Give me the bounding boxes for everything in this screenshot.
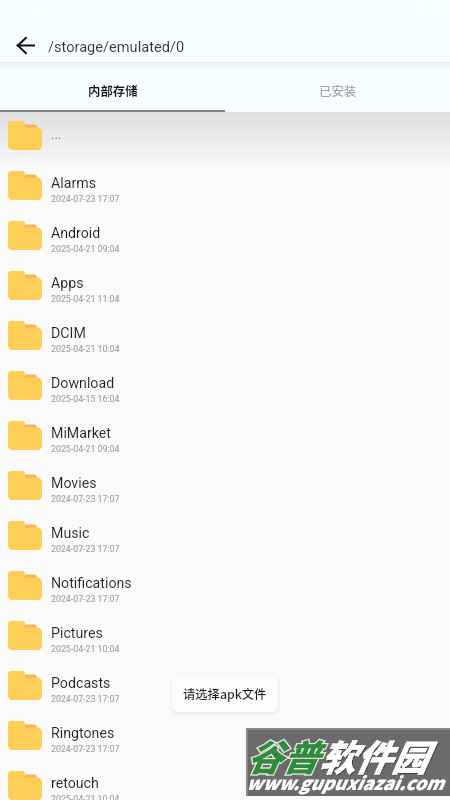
staticText: 软件园 (319, 729, 428, 781)
staticText: 内部存储 (88, 82, 138, 100)
staticText: Pictures (51, 625, 103, 642)
staticText: 2025-04-21 11:04 (51, 294, 120, 304)
staticText: Download (51, 375, 115, 392)
staticText: ... (51, 127, 62, 142)
staticText: 2024-07-23 17:07 (51, 744, 120, 754)
staticText: Podcasts (51, 675, 111, 692)
button[interactable]: DCIM (0, 310, 450, 360)
button[interactable]: Movies (0, 460, 450, 510)
staticText: Movies (51, 475, 97, 492)
staticText: 2024-07-23 17:07 (51, 694, 120, 704)
button[interactable]: Alarms (0, 160, 450, 210)
button[interactable]: Music (0, 510, 450, 560)
button[interactable]: Podcasts (0, 660, 450, 710)
button[interactable]: Android (0, 210, 450, 260)
staticText: 请选择apk文件 (183, 685, 267, 703)
staticText: 2025-04-21 09:04 (51, 444, 120, 454)
button[interactable]: retouch (0, 760, 450, 800)
staticText: Android (51, 225, 101, 242)
staticText: Apps (51, 275, 84, 292)
staticText: 2025-04-21 10:04 (51, 794, 120, 800)
staticText: /storage/emulated/0 (48, 38, 185, 55)
staticText: 2025-04-21 09:04 (51, 244, 120, 254)
staticText: 2024-07-23 17:07 (51, 194, 120, 204)
staticText: Music (51, 525, 90, 542)
staticText: Ringtones (51, 725, 115, 742)
button[interactable]: Ringtones (0, 710, 450, 760)
button[interactable]: 已安装 (225, 70, 450, 110)
staticText: DCIM (51, 325, 86, 342)
button[interactable]: ... (0, 110, 450, 160)
staticText: 软件园 (320, 730, 429, 782)
staticText: 2024-07-23 17:07 (51, 544, 120, 554)
staticText: 谷普 (246, 729, 319, 781)
staticText: 2025-04-21 10:04 (51, 644, 120, 654)
staticText: www.gupuxiazai.com (246, 769, 444, 795)
staticText: 2024-07-23 17:07 (51, 594, 120, 604)
staticText: Alarms (51, 175, 96, 192)
button[interactable]: MiMarket (0, 410, 450, 460)
staticText: Notifications (51, 575, 132, 592)
button[interactable]: 内部存储 (0, 70, 225, 110)
staticText: MiMarket (51, 425, 111, 442)
button[interactable]: Download (0, 360, 450, 410)
staticText: 软件园 (319, 729, 428, 781)
button[interactable]: Apps (0, 260, 450, 310)
staticText: 已安装 (319, 82, 357, 100)
button[interactable]: Pictures (0, 610, 450, 660)
button[interactable]: Back (3, 23, 47, 67)
staticText: 2025-04-15 16:04 (51, 394, 120, 404)
staticText: 谷普 (247, 730, 320, 782)
button[interactable]: Notifications (0, 560, 450, 610)
staticText: 2025-04-21 10:04 (51, 344, 120, 354)
staticText: 谷普 (246, 729, 319, 781)
staticText: 2024-07-23 17:07 (51, 494, 120, 504)
staticText: retouch (51, 775, 99, 792)
